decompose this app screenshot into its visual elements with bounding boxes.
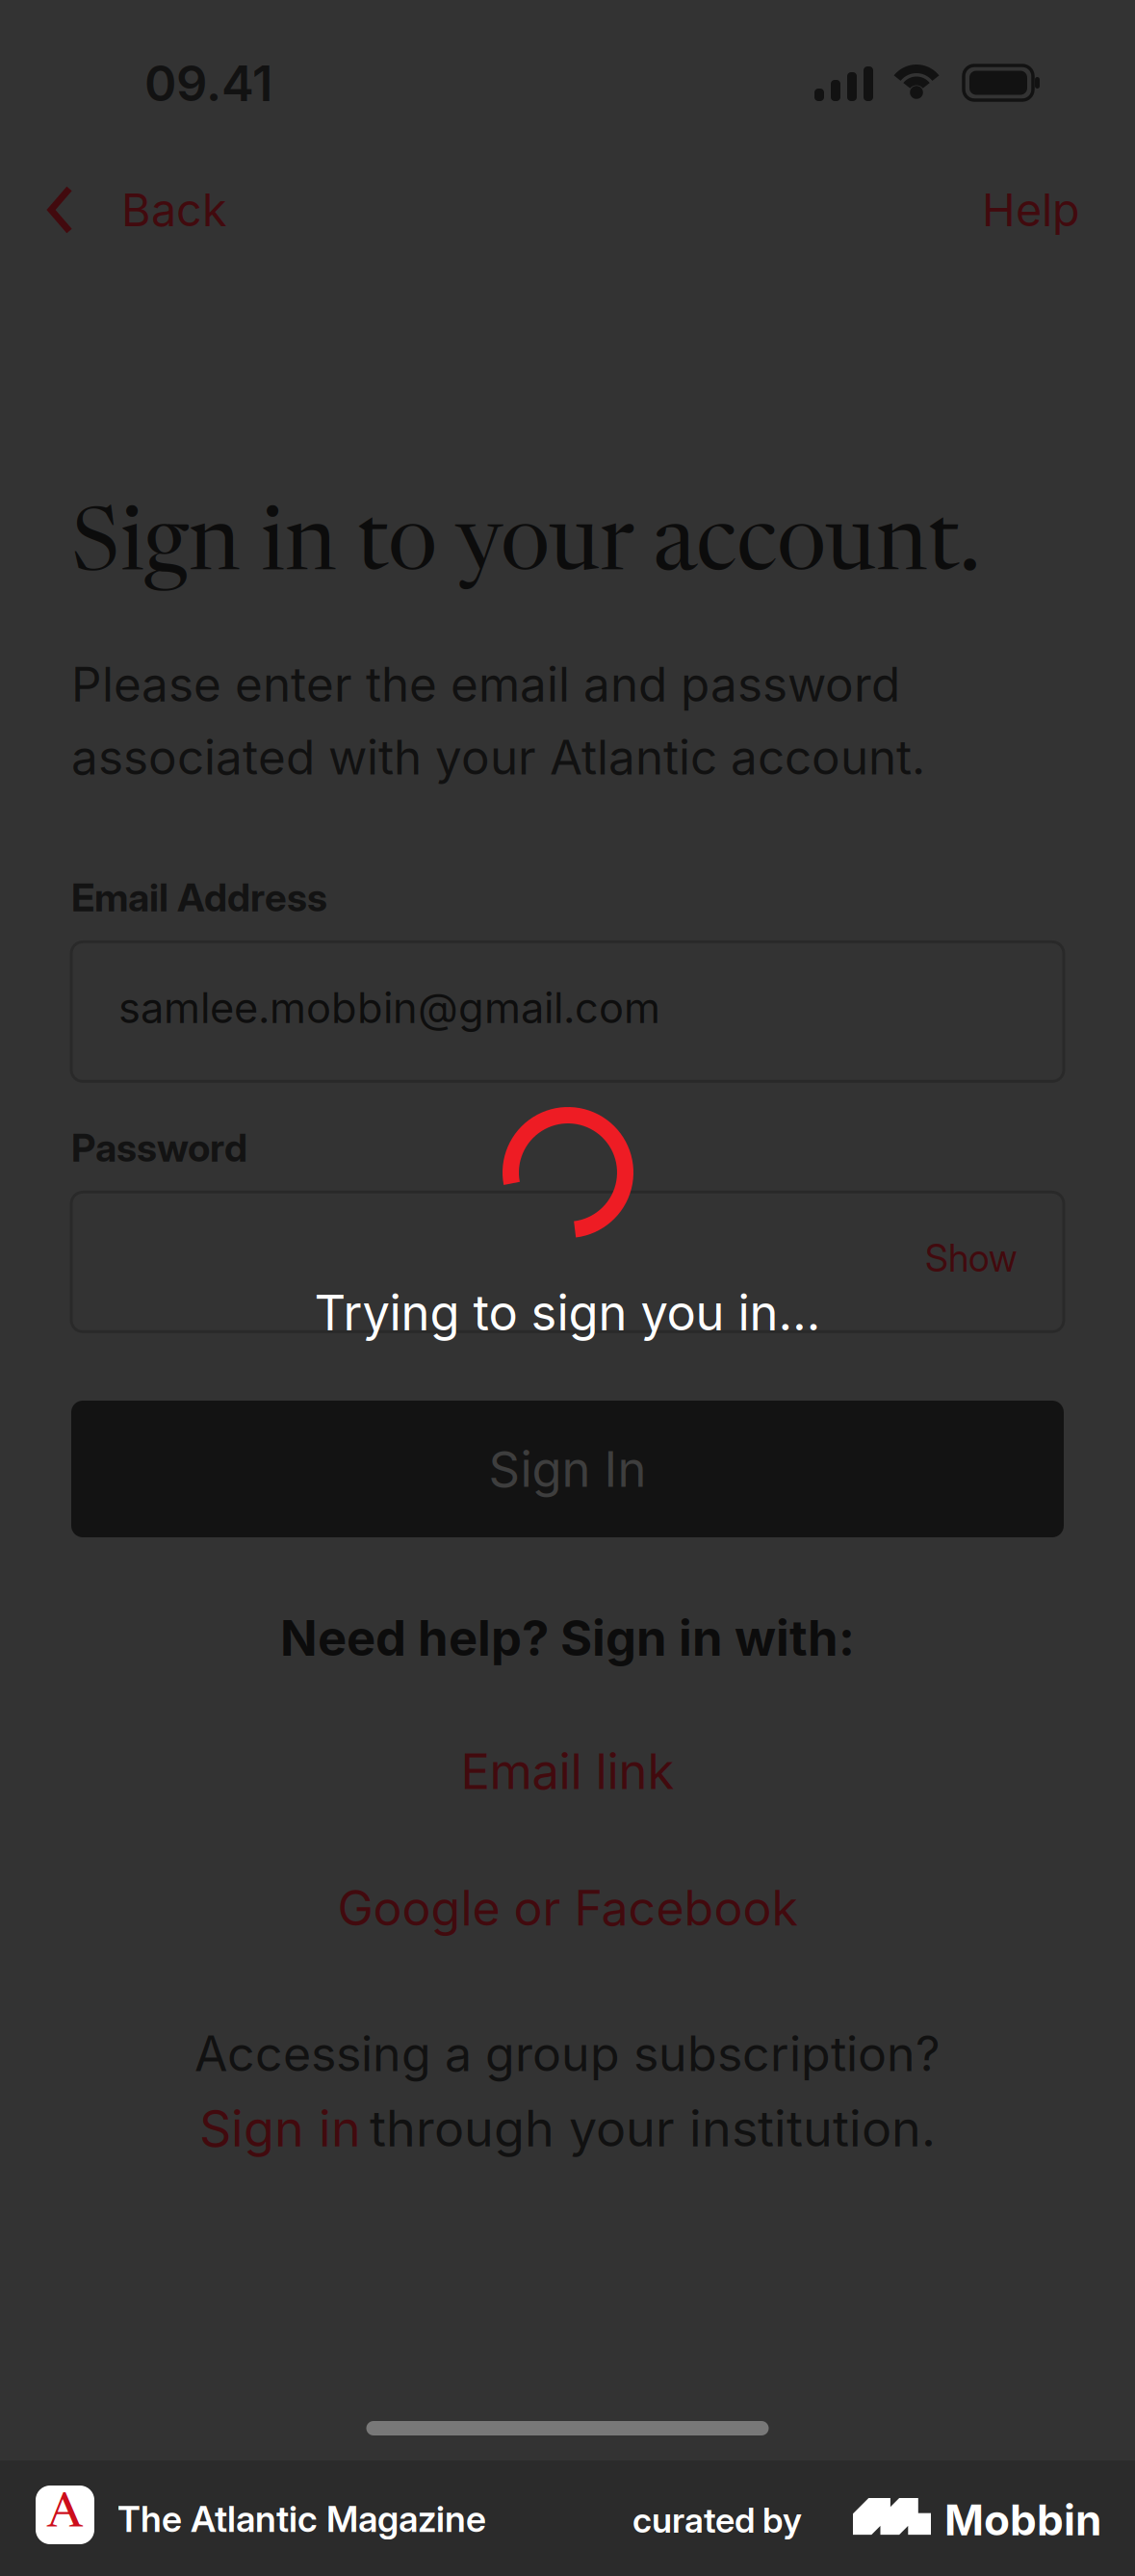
staticText: Please enter the email and password asso… xyxy=(71,656,925,786)
staticText: Back xyxy=(121,183,227,237)
staticText: through your institution. xyxy=(361,2098,936,2159)
staticText: Email Address xyxy=(71,874,327,921)
staticText: The Atlantic Magazine xyxy=(117,2497,486,2541)
staticText: Sign In xyxy=(489,1439,646,1498)
staticText: Email link xyxy=(461,1742,674,1801)
button[interactable]: Help xyxy=(947,164,1115,256)
staticText: Sign in to your account. xyxy=(71,505,980,593)
staticText: Need help? Sign in with: xyxy=(280,1609,855,1668)
button[interactable]: Email link xyxy=(423,1731,712,1812)
button[interactable]: Sign in xyxy=(199,2098,361,2159)
button[interactable]: Sign In xyxy=(71,1401,1064,1537)
staticText: 09.41 xyxy=(144,54,272,113)
staticText: Show xyxy=(925,1236,1018,1281)
staticText: Mobbin xyxy=(944,2494,1101,2545)
staticText: A xyxy=(47,2491,83,2539)
button[interactable]: Show xyxy=(906,1214,1037,1309)
button[interactable]: Google or Facebook xyxy=(298,1868,837,1948)
staticText: Sign in xyxy=(199,2098,361,2159)
staticText: Help xyxy=(982,183,1080,237)
button[interactable]: Back xyxy=(0,164,256,256)
staticText: curated by xyxy=(632,2499,802,2541)
staticText: Google or Facebook xyxy=(337,1879,798,1937)
staticText: samlee.mobbin@gmail.com xyxy=(118,983,660,1033)
staticText: Trying to sign you in… xyxy=(314,1283,821,1342)
staticText: Password xyxy=(71,1124,247,1171)
staticText: Accessing a group subscription? xyxy=(194,2024,941,2083)
